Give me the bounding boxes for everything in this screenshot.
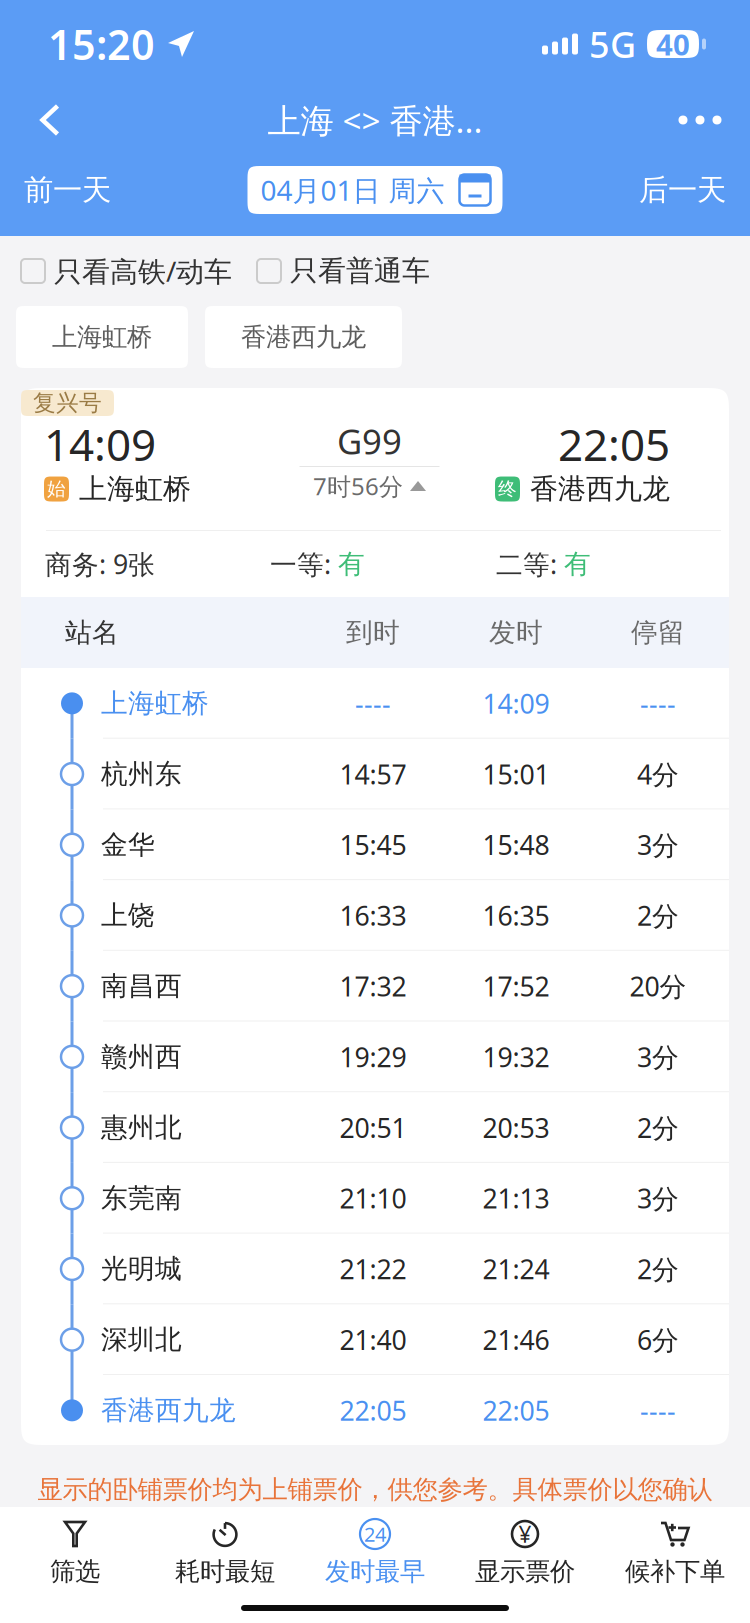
staticText: 只看普通车 [290, 254, 430, 288]
staticText: 3分 [637, 827, 679, 862]
staticText: 15:48 [482, 827, 549, 862]
staticText: 3分 [637, 1180, 679, 1216]
staticText: 19:29 [339, 1039, 406, 1074]
staticText: 21:40 [339, 1322, 406, 1357]
staticText: ---- [355, 686, 391, 721]
button[interactable]: 香港西九龙 [205, 306, 402, 368]
staticText: 杭州东 [101, 758, 182, 790]
staticText: 耗时最短 [175, 1556, 275, 1587]
staticText: 21:13 [482, 1180, 549, 1216]
staticText: 复兴号 [33, 389, 102, 417]
staticText: 21:22 [339, 1251, 406, 1287]
staticText: 4分 [637, 756, 679, 792]
staticText: 15:01 [482, 756, 549, 792]
staticText: 一等: [270, 546, 338, 582]
staticText: 上海虹桥 [79, 472, 191, 506]
staticText: 发时最早 [325, 1556, 425, 1587]
staticText: 21:10 [339, 1180, 406, 1216]
button[interactable]: 候补下单 [600, 1507, 750, 1591]
button[interactable]: 后一天 [560, 159, 726, 221]
staticText: 6分 [637, 1322, 679, 1357]
staticText: 始 [47, 477, 66, 500]
staticText: 只看高铁/动车 [54, 252, 232, 290]
staticText: 东莞南 [101, 1182, 182, 1215]
staticText: 深圳北 [101, 1323, 182, 1356]
staticText: ¥ [518, 1519, 531, 1549]
staticText: 3分 [637, 1039, 679, 1074]
staticText: 上海虹桥 [101, 687, 209, 720]
staticText: 南昌西 [101, 970, 182, 1003]
button[interactable]: 筛选 [0, 1507, 150, 1591]
button[interactable]: 更多 [658, 88, 742, 152]
staticText: 15:20 [48, 17, 155, 71]
staticText: 20分 [629, 968, 686, 1004]
staticText: 发时 [489, 616, 543, 649]
staticText: 香港西九龙 [241, 321, 366, 352]
staticText: 候补下单 [625, 1556, 725, 1587]
staticText: 17:52 [482, 968, 549, 1004]
staticText: 15:45 [339, 827, 406, 862]
staticText: 上海 <> 香港... [267, 98, 482, 142]
button[interactable]: 前一天 [24, 159, 190, 221]
staticText: 21:24 [482, 1251, 549, 1287]
staticText: 40 [656, 24, 690, 63]
staticText: 7时56分 [313, 470, 403, 502]
staticText: 5G [589, 20, 636, 68]
staticText: 上海虹桥 [52, 321, 152, 352]
staticText: 24 [364, 1521, 386, 1547]
button[interactable]: 上海虹桥 [16, 306, 188, 368]
staticText: 光明城 [101, 1253, 182, 1285]
staticText: 香港西九龙 [530, 472, 670, 506]
staticText: ---- [640, 686, 676, 721]
staticText: 22:05 [482, 1393, 549, 1428]
staticText: 前一天 [24, 172, 111, 208]
button[interactable]: 只看普通车 [251, 244, 436, 298]
staticText: 04月01日 周六 [260, 171, 444, 209]
staticText: 21:46 [482, 1322, 549, 1357]
staticText: ---- [640, 1393, 676, 1428]
staticText: 16:33 [339, 898, 406, 933]
button[interactable]: 耗时最短 [150, 1507, 300, 1591]
staticText: 二等: [496, 546, 564, 582]
staticText: 2分 [637, 1110, 679, 1145]
staticText: 香港西九龙 [101, 1394, 236, 1427]
staticText: 金华 [101, 828, 155, 861]
staticText: 后一天 [639, 172, 726, 208]
staticText: 14:09 [44, 415, 156, 473]
button[interactable]: ¥ [450, 1507, 600, 1591]
staticText: 显示票价 [475, 1556, 575, 1587]
staticText: 22:05 [339, 1393, 406, 1428]
staticText: 9张 [113, 546, 155, 582]
staticText: 有 [338, 548, 365, 580]
staticText: 14:57 [339, 756, 406, 792]
button[interactable]: 24 [300, 1507, 450, 1591]
staticText: 2分 [637, 1251, 679, 1287]
staticText: 停留 [631, 616, 685, 649]
staticText: 显示的卧铺票价均为上铺票价，供您参考。具体票价以您确认 [37, 1474, 712, 1505]
staticText: 20:53 [482, 1110, 549, 1145]
staticText: 2分 [637, 898, 679, 933]
staticText: 到时 [346, 616, 400, 649]
staticText: 赣州西 [101, 1040, 182, 1073]
staticText: 上饶 [101, 899, 155, 932]
button[interactable]: 只看高铁/动车 [15, 244, 238, 298]
staticText: 16:35 [482, 898, 549, 933]
staticText: 有 [564, 548, 591, 580]
staticText: 站名 [65, 616, 119, 649]
button[interactable]: 04月01日 周六 [247, 166, 502, 214]
staticText: 商务: [45, 546, 113, 582]
staticText: 22:05 [558, 415, 670, 473]
staticText: 17:32 [339, 968, 406, 1004]
staticText: 惠州北 [101, 1111, 182, 1144]
staticText: 14:09 [482, 686, 549, 721]
staticText: 筛选 [50, 1556, 100, 1587]
staticText: G99 [337, 418, 402, 464]
staticText: 终 [498, 477, 517, 500]
staticText: 20:51 [339, 1110, 406, 1145]
staticText: 19:32 [482, 1039, 549, 1074]
button[interactable]: 返回 [8, 88, 92, 152]
